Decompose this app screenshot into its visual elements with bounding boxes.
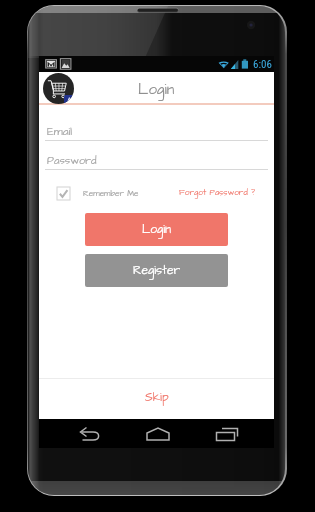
staticText: Email bbox=[47, 124, 73, 140]
staticText: Login bbox=[138, 79, 175, 100]
button[interactable]: Skip bbox=[39, 377, 274, 417]
button[interactable]: Home bbox=[133, 421, 183, 448]
button[interactable]: Back bbox=[71, 421, 127, 448]
button[interactable]: App logo bbox=[43, 73, 74, 104]
staticText: Skip bbox=[145, 389, 169, 406]
button[interactable]: Register bbox=[85, 254, 228, 287]
staticText: Register bbox=[133, 262, 181, 279]
button[interactable]: Login bbox=[85, 213, 228, 246]
staticText: Forgot Password ? bbox=[179, 187, 256, 199]
button[interactable]: Recent apps bbox=[201, 420, 253, 447]
button[interactable]: Remember Me checkbox bbox=[57, 187, 70, 200]
staticText: Password bbox=[47, 153, 97, 168]
staticText: Login bbox=[142, 221, 172, 238]
button[interactable]: Forgot Password ? bbox=[179, 187, 256, 199]
staticText: Remember Me bbox=[83, 188, 139, 199]
staticText: 6:06 bbox=[253, 58, 272, 71]
